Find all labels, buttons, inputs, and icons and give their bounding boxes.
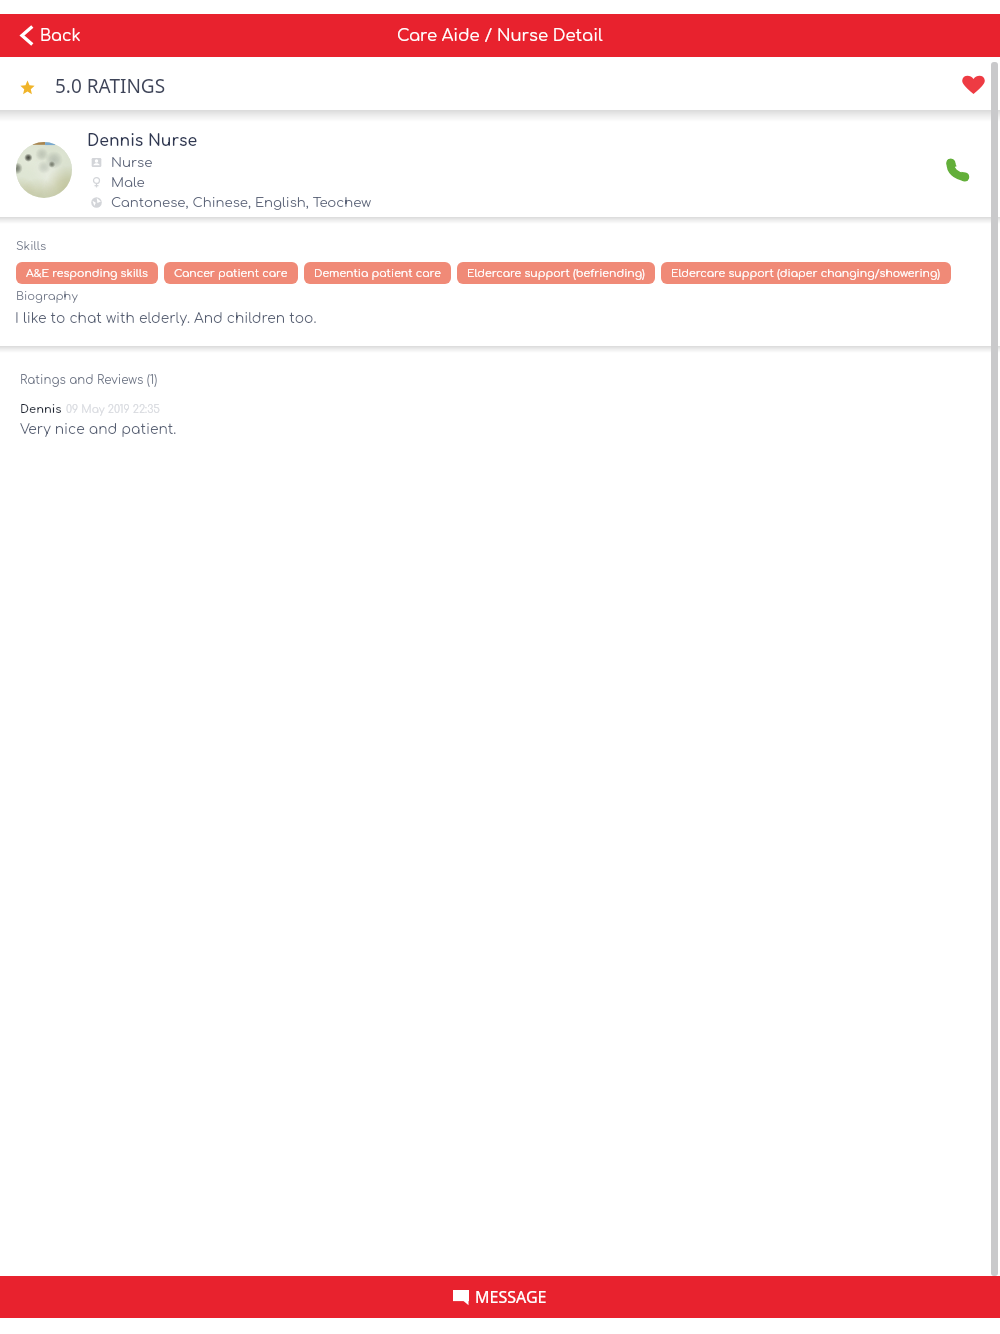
- staticText: Cantonese, Chinese, English, Teochew: [111, 195, 372, 210]
- button[interactable]: Favourite: [950, 61, 996, 107]
- button[interactable]: Call: [936, 147, 982, 193]
- staticText: Dementia patient care: [314, 267, 441, 279]
- staticText: I like to chat with elderly. And childre…: [15, 311, 317, 326]
- button[interactable]: MESSAGE: [0, 1276, 1000, 1318]
- staticText: MESSAGE: [475, 1286, 547, 1308]
- staticText: Biography: [16, 290, 78, 303]
- button[interactable]: Back: [20, 25, 81, 46]
- staticText: Eldercare support (diaper changing/showe…: [671, 267, 941, 279]
- staticText: Ratings and Reviews (1): [20, 374, 158, 387]
- button[interactable]: Eldercare support (befriending): [457, 262, 655, 284]
- staticText: Back: [40, 27, 81, 45]
- button[interactable]: Cancer patient care: [164, 262, 298, 284]
- button[interactable]: A&E responding skills: [16, 262, 158, 284]
- staticText: Nurse: [111, 155, 153, 170]
- staticText: Male: [111, 175, 145, 190]
- staticText: Very nice and patient.: [20, 422, 177, 437]
- staticText: A&E responding skills: [26, 267, 148, 279]
- staticText: Dennis: [20, 403, 62, 416]
- staticText: 5.0 RATINGS: [55, 73, 166, 99]
- staticText: Care Aide / Nurse Detail: [397, 27, 603, 45]
- button[interactable]: Eldercare support (diaper changing/showe…: [661, 262, 951, 284]
- staticText: Eldercare support (befriending): [467, 267, 645, 279]
- staticText: Cancer patient care: [174, 267, 288, 279]
- staticText: Skills: [16, 240, 47, 253]
- staticText: 09 May 2019 22:35: [66, 404, 160, 416]
- staticText: Dennis Nurse: [87, 132, 198, 149]
- button[interactable]: Dementia patient care: [304, 262, 451, 284]
